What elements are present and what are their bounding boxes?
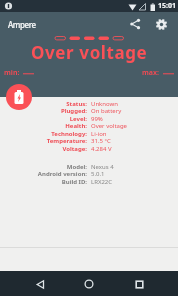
staticText: min:	[4, 68, 20, 78]
staticText: max:	[142, 68, 160, 78]
staticText: Status:	[0, 100, 87, 108]
staticText: Plugged:	[0, 107, 87, 115]
button[interactable]	[152, 15, 170, 33]
button[interactable]	[79, 274, 99, 294]
staticText: 4.284 V	[91, 145, 112, 153]
button[interactable]	[129, 274, 149, 294]
staticText: Level:	[0, 115, 87, 123]
staticText: Android version:	[0, 170, 87, 178]
staticText: Technology:	[0, 130, 87, 138]
staticText: 31.5 °C	[91, 137, 111, 145]
staticText: LRX22C	[91, 178, 113, 186]
button[interactable]	[126, 15, 144, 33]
staticText: 5.0.1	[91, 170, 105, 178]
staticText: Over voltage	[91, 122, 127, 130]
staticText: Health:	[0, 122, 87, 130]
staticText: Unknown	[91, 100, 118, 108]
staticText: Voltage:	[0, 145, 87, 153]
staticText: Temperature:	[0, 137, 87, 145]
staticText: Model:	[0, 163, 87, 171]
staticText: Li-ion	[91, 130, 107, 138]
staticText: Nexus 4	[91, 163, 114, 171]
staticText: 99%	[91, 115, 103, 123]
staticText: Ampere	[8, 19, 36, 30]
staticText: Over voltage	[31, 41, 148, 64]
staticText: On battery	[91, 107, 122, 115]
button[interactable]	[6, 84, 32, 110]
staticText: 15:01	[158, 1, 176, 11]
button[interactable]	[30, 274, 50, 294]
staticText: Build ID:	[0, 178, 87, 186]
